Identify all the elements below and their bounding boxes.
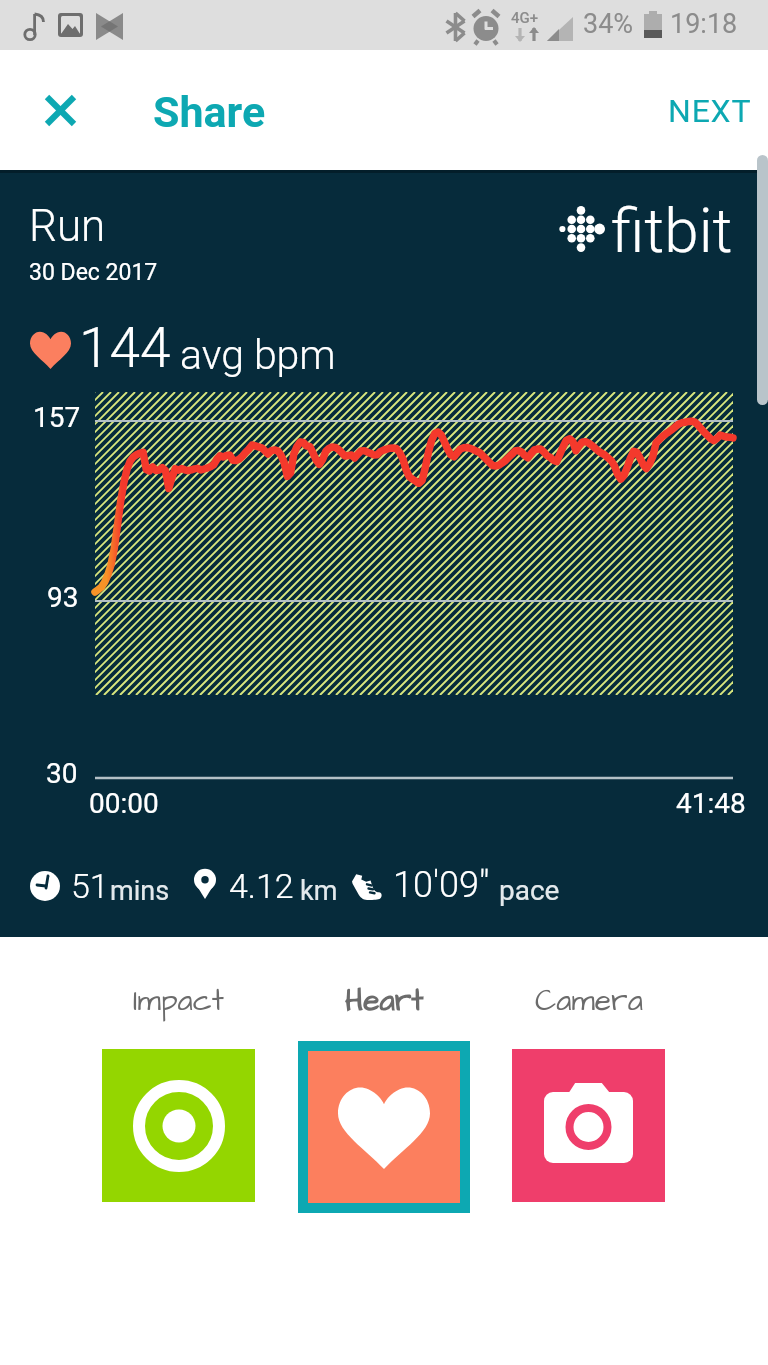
staticText: 30: [46, 757, 78, 790]
staticText: 41:48: [676, 787, 746, 820]
staticText: Heart: [345, 980, 424, 1022]
staticText: 30 Dec 2017: [29, 259, 158, 286]
staticText: fitbit: [611, 194, 733, 267]
staticText: Share: [153, 87, 266, 137]
staticText: 19:18: [670, 8, 738, 40]
button[interactable]: Heart: [298, 1041, 470, 1213]
staticText: 10'09": [393, 864, 490, 906]
staticText: mins: [110, 875, 170, 907]
staticText: 51: [71, 866, 109, 906]
button[interactable]: Close: [24, 74, 96, 146]
staticText: Impact: [133, 980, 224, 1022]
button[interactable]: Impact: [102, 1049, 255, 1202]
staticText: 93: [47, 581, 79, 614]
staticText: 4.12: [229, 866, 294, 906]
staticText: 144: [79, 316, 171, 380]
staticText: NEXT: [668, 92, 752, 130]
staticText: 34%: [583, 8, 634, 40]
staticText: km: [300, 875, 338, 907]
staticText: Run: [29, 200, 106, 252]
staticText: Camera: [535, 980, 643, 1022]
staticText: 00:00: [89, 787, 159, 820]
staticText: pace: [499, 874, 560, 907]
staticText: avg bpm: [180, 331, 336, 379]
staticText: 157: [33, 401, 81, 434]
button[interactable]: NEXT: [660, 84, 760, 138]
button[interactable]: Camera: [512, 1049, 665, 1202]
staticText: 4G+: [511, 9, 539, 27]
